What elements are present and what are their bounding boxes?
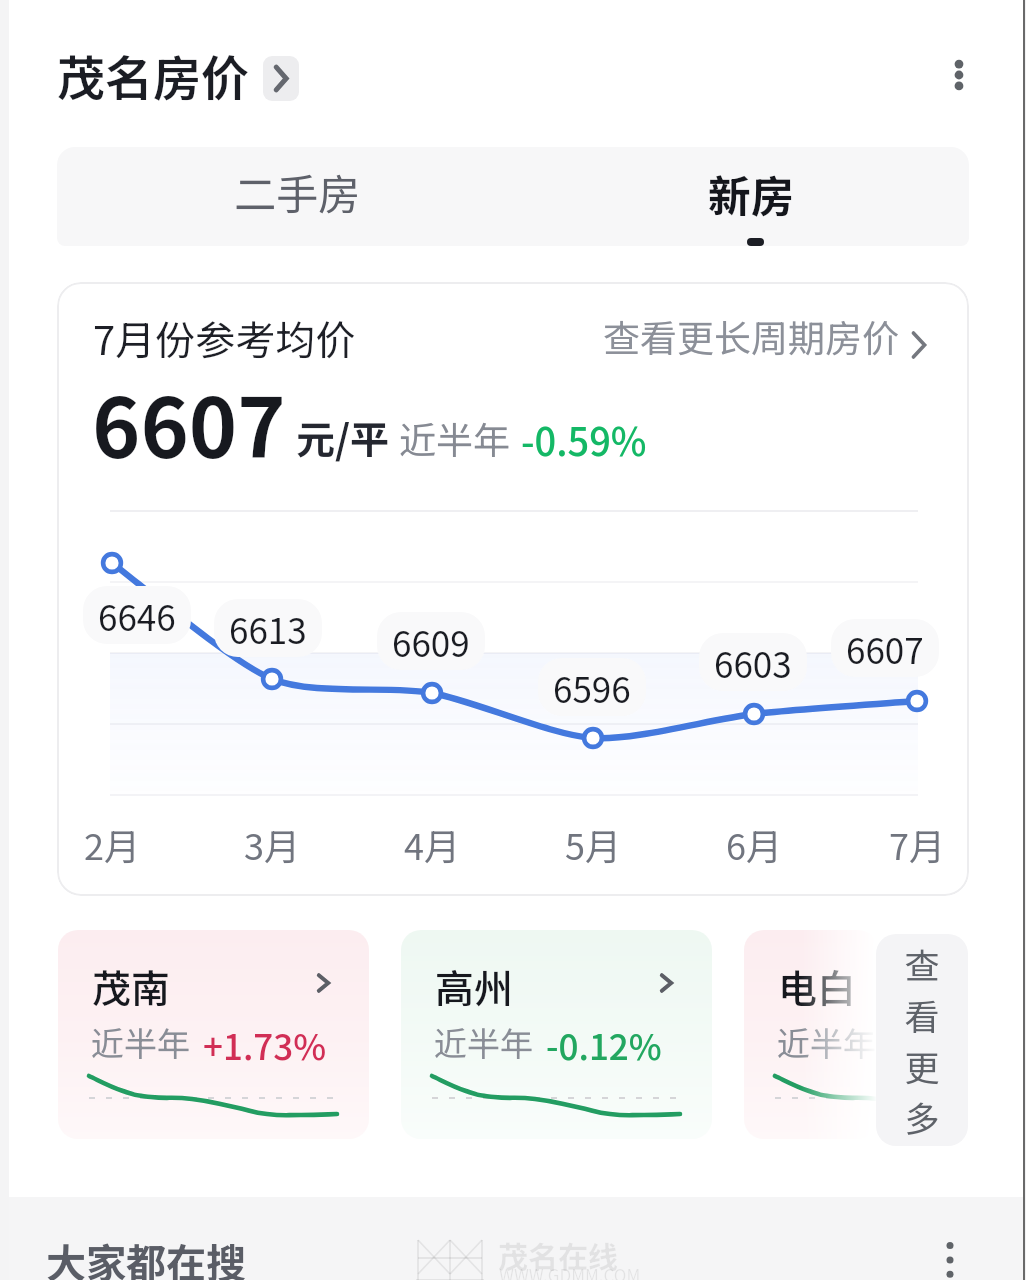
button[interactable]: 茂名房价 — [57, 40, 299, 110]
button[interactable]: 二手房 — [57, 147, 513, 246]
staticText: 2月 — [84, 818, 140, 870]
staticText: 6603 — [714, 637, 792, 688]
staticText: -0.12% — [546, 1019, 662, 1070]
button[interactable]: 茂南 — [58, 930, 369, 1139]
staticText: WWW.GDMM.COM — [499, 1262, 641, 1280]
staticText: 查 看 更 多 — [904, 938, 940, 1142]
staticText: 7月份参考均价 — [93, 309, 356, 367]
staticText: 4月 — [404, 818, 460, 870]
button[interactable]: 查看更长周期房价 — [598, 306, 934, 370]
button[interactable]: 高州 — [401, 930, 712, 1139]
staticText: 6613 — [229, 603, 307, 654]
staticText: +1.73% — [203, 1019, 327, 1070]
staticText: 茂名在线 — [498, 1233, 618, 1276]
staticText: 近半年 — [777, 1018, 876, 1066]
staticText: 近半年 — [399, 411, 510, 465]
button[interactable]: More — [921, 1222, 979, 1280]
staticText: 茂南 — [92, 958, 171, 1014]
staticText: 近半年 — [434, 1018, 533, 1066]
staticText: 茂名房价 — [57, 40, 250, 110]
staticText: 大家都在搜 — [46, 1232, 246, 1280]
staticText: 新房 — [708, 162, 794, 224]
staticText: 电白 — [778, 958, 857, 1014]
button[interactable]: More options — [930, 46, 988, 104]
staticText: 高州 — [435, 958, 514, 1014]
staticText: 6月 — [726, 818, 782, 870]
staticText: 元/平 — [296, 409, 390, 465]
staticText: 5月 — [565, 818, 621, 870]
staticText: 6607 — [846, 623, 924, 674]
staticText: 6596 — [553, 662, 631, 713]
staticText: 6609 — [392, 616, 470, 667]
staticText: 近半年 — [91, 1018, 190, 1066]
staticText: 6607 — [92, 363, 286, 482]
button[interactable]: 电白 — [744, 930, 878, 1139]
staticText: 二手房 — [234, 161, 361, 222]
button[interactable]: 查 看 更 多 — [876, 934, 968, 1146]
staticText: 3月 — [244, 818, 300, 870]
staticText: -0.59% — [521, 412, 647, 467]
button[interactable]: 新房 — [513, 147, 969, 246]
staticText: 7月 — [889, 818, 945, 870]
staticText: 6646 — [98, 590, 176, 641]
staticText: 查看更长周期房价 — [603, 309, 899, 363]
